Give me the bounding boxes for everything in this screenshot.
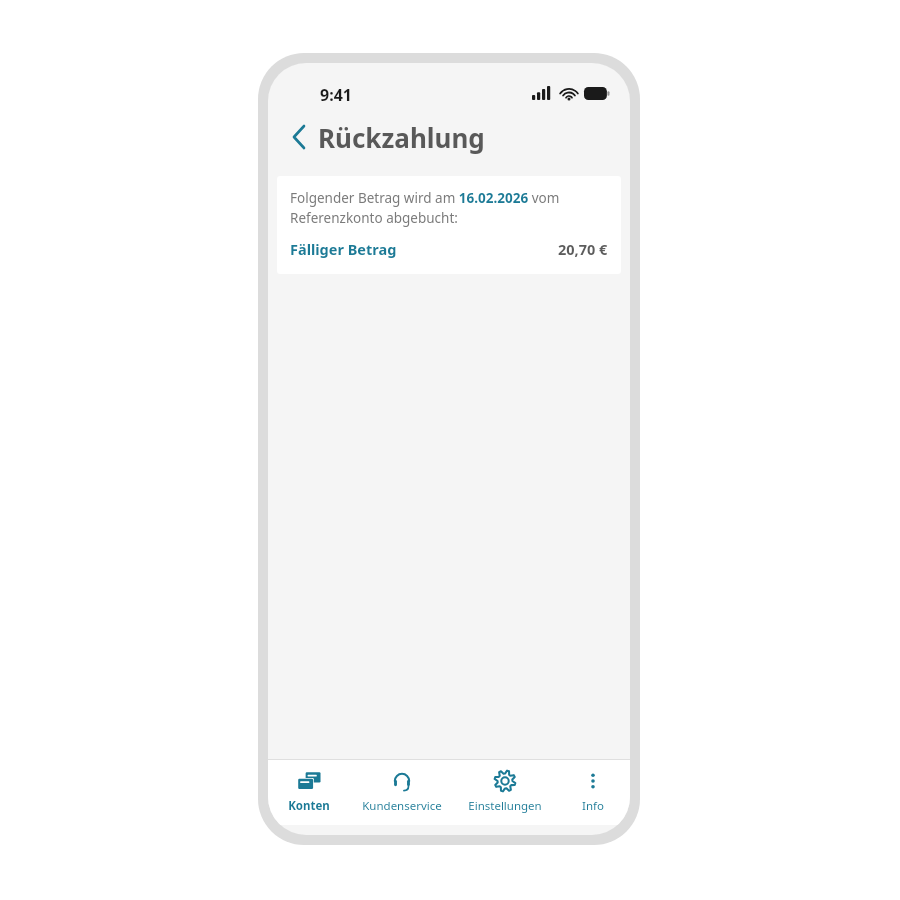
staticText: Konten	[288, 798, 330, 814]
staticText: Einstellungen	[468, 798, 542, 814]
staticText: Rückzahlung	[318, 120, 485, 155]
staticText: Fälliger Betrag	[290, 239, 397, 259]
button[interactable]: Folgender Betrag wird am 16.02.2026 vom …	[277, 176, 621, 274]
button[interactable]: Einstellungen	[453, 760, 556, 825]
staticText: 20,70 €	[558, 239, 608, 259]
button[interactable]: Konten	[268, 760, 350, 825]
staticText: Kundenservice	[362, 798, 442, 814]
button[interactable]: Info	[556, 760, 630, 825]
staticText: Folgender Betrag wird am 16.02.2026 vom …	[290, 189, 608, 227]
staticText: 9:41	[320, 84, 352, 106]
button[interactable]: Zurück	[284, 122, 314, 152]
staticText: Info	[582, 798, 604, 814]
button[interactable]: Kundenservice	[350, 760, 453, 825]
